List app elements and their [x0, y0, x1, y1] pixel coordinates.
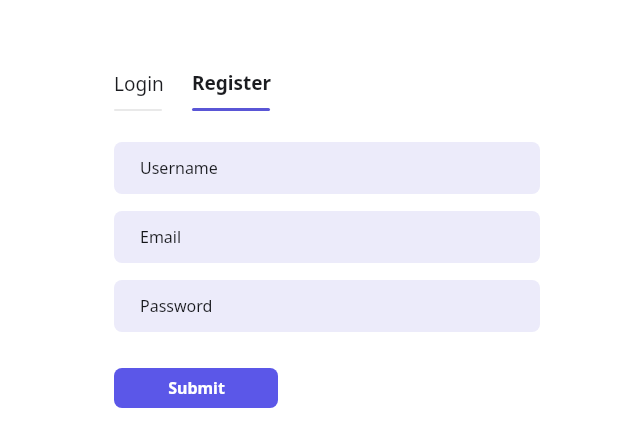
button[interactable]: Email [114, 211, 540, 263]
button[interactable]: Submit [114, 368, 278, 408]
staticText: Username [140, 157, 218, 179]
staticText: Email [140, 226, 182, 248]
staticText: Submit [168, 377, 225, 399]
staticText: Password [140, 295, 213, 317]
button[interactable]: Register [192, 70, 272, 111]
staticText: Register [192, 70, 272, 96]
button[interactable]: Login [114, 71, 164, 111]
button[interactable]: Username [114, 142, 540, 194]
staticText: Login [114, 71, 164, 97]
button[interactable]: Password [114, 280, 540, 332]
